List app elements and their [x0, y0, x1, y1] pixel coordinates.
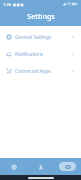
button[interactable]: Notifications — [3, 47, 78, 61]
button[interactable]: Settings — [54, 158, 81, 175]
button[interactable]: Home — [0, 158, 27, 175]
staticText: Settings — [27, 12, 55, 22]
button[interactable]: Downloads — [27, 158, 54, 175]
button[interactable]: Connected Apps — [3, 64, 78, 78]
staticText: Notifications — [15, 51, 71, 57]
staticText: General Settings — [15, 34, 71, 40]
staticText: 1:24 — [3, 2, 11, 7]
button[interactable]: General Settings — [3, 30, 78, 44]
staticText: Connected Apps — [15, 68, 71, 74]
